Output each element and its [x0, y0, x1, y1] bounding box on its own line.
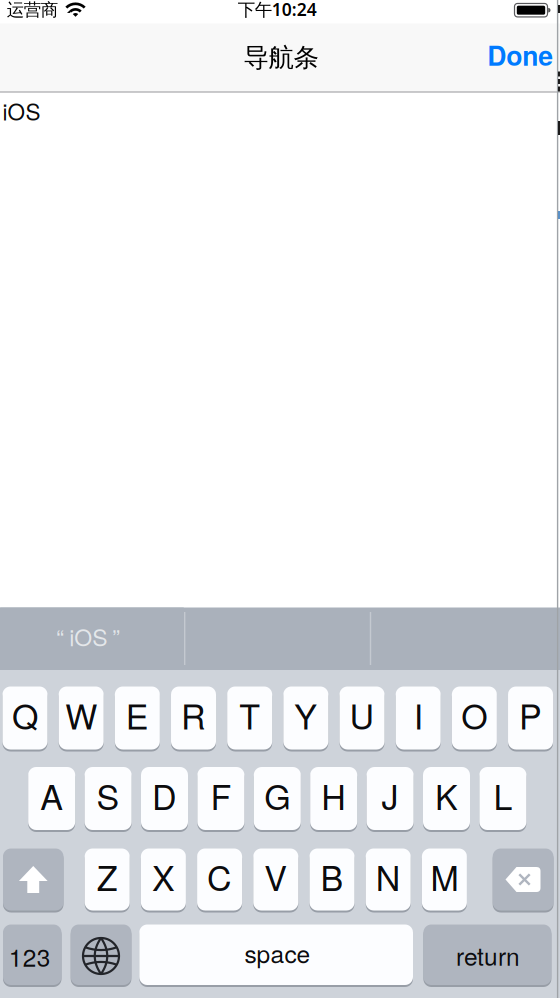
button[interactable]: return — [423, 924, 551, 987]
button[interactable]: A — [28, 767, 75, 832]
button[interactable]: Q — [2, 686, 47, 751]
staticText: J — [382, 771, 399, 820]
button[interactable]: W — [59, 686, 104, 751]
staticText: W — [65, 690, 97, 739]
staticText: I — [414, 690, 423, 739]
staticText: 123 — [9, 939, 51, 974]
button[interactable]: M — [422, 848, 467, 912]
staticText: S — [97, 771, 120, 820]
staticText: space — [244, 935, 310, 970]
staticText: N — [376, 852, 401, 901]
button[interactable]: E — [115, 686, 160, 751]
staticText: A — [40, 771, 63, 820]
button[interactable]: O — [452, 686, 497, 751]
staticText: Z — [97, 852, 118, 901]
staticText: iOS — [2, 95, 40, 127]
staticText: G — [264, 771, 290, 820]
button[interactable]: Numbers — [3, 924, 61, 987]
staticText: 下午10:24 — [238, 0, 317, 21]
button[interactable]: T — [227, 686, 272, 751]
button[interactable]: F — [197, 767, 244, 832]
staticText: M — [430, 852, 458, 901]
button[interactable]: Z — [85, 848, 130, 912]
staticText: 运营商 — [7, 0, 58, 21]
button[interactable]: C — [197, 848, 242, 912]
staticText: D — [152, 771, 177, 820]
button[interactable]: G — [254, 767, 301, 832]
button[interactable]: B — [309, 848, 354, 912]
staticText: P — [519, 690, 542, 739]
staticText: 导航条 — [243, 42, 318, 74]
button[interactable]: J — [367, 767, 414, 832]
staticText: V — [264, 852, 287, 901]
button[interactable]: X — [141, 848, 186, 912]
staticText: R — [181, 690, 206, 739]
button[interactable]: Shift — [3, 848, 63, 912]
staticText: E — [126, 690, 149, 739]
button[interactable]: V — [253, 848, 298, 912]
button[interactable]: S — [85, 767, 132, 832]
staticText: T — [239, 690, 260, 739]
staticText: U — [349, 690, 374, 739]
staticText: return — [456, 938, 520, 973]
button[interactable]: U — [339, 686, 384, 751]
staticText: X — [152, 852, 175, 901]
button[interactable]: N — [366, 848, 411, 912]
staticText: Y — [294, 690, 317, 739]
button[interactable]: Next keyboard — [71, 924, 131, 987]
staticText: Q — [12, 690, 38, 739]
staticText: Done — [487, 36, 553, 74]
button[interactable]: H — [310, 767, 357, 832]
staticText: L — [493, 771, 512, 820]
staticText: O — [461, 690, 487, 739]
button[interactable]: space — [139, 924, 413, 987]
button[interactable]: “ iOS ” — [0, 607, 184, 670]
staticText: B — [320, 852, 343, 901]
button[interactable]: Delete — [493, 848, 553, 912]
button[interactable]: Done — [487, 36, 553, 74]
staticText: K — [435, 771, 458, 820]
button[interactable]: D — [141, 767, 188, 832]
staticText: F — [210, 771, 231, 820]
staticText: C — [207, 852, 232, 901]
button[interactable]: I — [396, 686, 441, 751]
button[interactable]: Y — [283, 686, 328, 751]
button[interactable]: R — [171, 686, 216, 751]
button[interactable]: P — [508, 686, 553, 751]
button[interactable]: K — [423, 767, 470, 832]
staticText: H — [321, 771, 346, 820]
button[interactable]: L — [479, 767, 526, 832]
staticText: “ iOS ” — [56, 620, 120, 653]
